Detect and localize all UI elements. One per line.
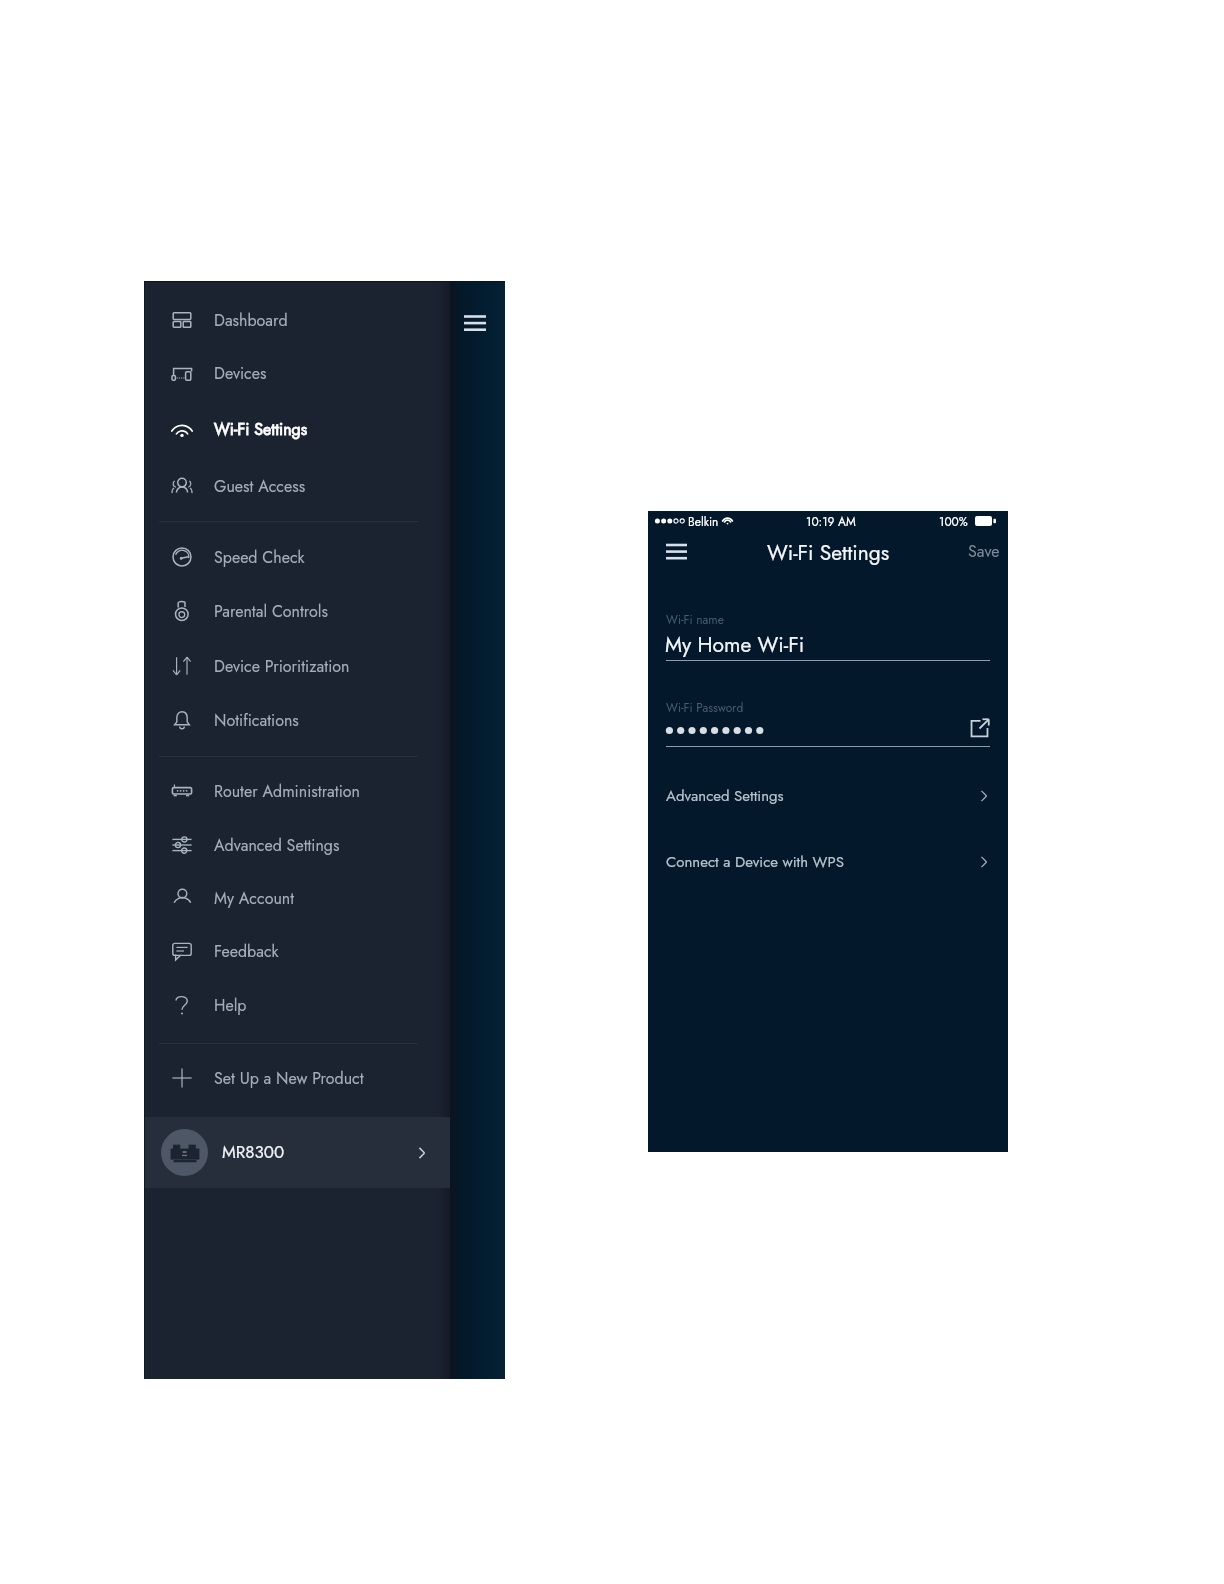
staticText: Speed Check (214, 546, 305, 569)
staticText: Devices (214, 362, 267, 385)
staticText: Help (214, 994, 247, 1017)
button[interactable]: Speed Check (144, 530, 450, 584)
staticText: Advanced Settings (666, 785, 784, 807)
button[interactable]: Open menu (666, 543, 687, 559)
button[interactable]: My Account (144, 871, 450, 925)
button[interactable]: Wi-Fi Settings (144, 402, 450, 456)
staticText: Wi-Fi Password (666, 699, 744, 716)
staticText: Wi-Fi Settings (214, 418, 308, 441)
button[interactable]: Connect a Device with WPS (648, 843, 1008, 881)
staticText: My Home Wi-Fi (665, 630, 805, 660)
button[interactable]: MR8300 (144, 1117, 450, 1188)
staticText: Notifications (214, 709, 299, 732)
staticText: Router Administration (214, 780, 360, 803)
button[interactable]: Parental Controls (144, 584, 450, 638)
staticText: Feedback (214, 940, 279, 963)
button[interactable]: Devices (144, 346, 450, 400)
staticText: Dashboard (214, 309, 288, 332)
staticText: 10:19 AM (806, 513, 856, 530)
button[interactable]: Guest Access (144, 459, 450, 513)
button[interactable]: Advanced Settings (144, 818, 450, 872)
staticText: Connect a Device with WPS (666, 851, 844, 873)
staticText: MR8300 (222, 1140, 285, 1165)
button[interactable]: Feedback (144, 924, 450, 978)
staticText: Device Prioritization (214, 655, 350, 678)
button[interactable]: Open menu (464, 315, 486, 331)
staticText: Wi-Fi Settings (648, 538, 1008, 568)
button[interactable]: Router Administration (144, 764, 450, 818)
staticText: 100% (939, 513, 968, 530)
button[interactable]: Device Prioritization (144, 639, 450, 693)
button[interactable]: Set Up a New Product (144, 1051, 450, 1105)
button[interactable]: Advanced Settings (648, 777, 1008, 815)
staticText: My Account (214, 887, 295, 910)
staticText: Wi-Fi name (666, 611, 724, 628)
staticText: Belkin (688, 513, 719, 530)
button[interactable]: Dashboard (144, 293, 450, 347)
staticText: Guest Access (214, 475, 306, 498)
staticText: Save (968, 540, 1000, 563)
button[interactable]: Help (144, 978, 450, 1032)
staticText: Parental Controls (214, 600, 328, 623)
staticText: Set Up a New Product (214, 1067, 364, 1090)
button[interactable]: Notifications (144, 693, 450, 747)
button[interactable]: Save (960, 535, 1008, 567)
button[interactable]: Share password (969, 718, 990, 739)
staticText: Advanced Settings (214, 834, 340, 857)
